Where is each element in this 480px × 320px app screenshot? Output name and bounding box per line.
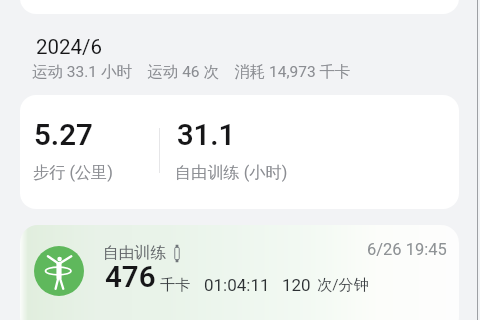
staticText: 2024/6: [36, 35, 103, 59]
staticText: 31.1: [177, 118, 235, 152]
staticText: 自由训练 (小时): [175, 162, 288, 182]
staticText: 运动 33.1 小时 运动 46 次 消耗 14,973 千卡: [32, 62, 351, 82]
staticText: 自由训练: [103, 243, 167, 263]
staticText: 千卡: [160, 275, 191, 294]
staticText: 步行 (公里): [33, 162, 113, 182]
staticText: 6/26 19:45: [367, 240, 447, 259]
button[interactable]: 5.27: [20, 95, 459, 209]
staticText: 01:04:11: [204, 275, 270, 295]
staticText: 476: [105, 260, 156, 295]
staticText: 5.27: [34, 118, 93, 153]
button[interactable]: 自由训练: [20, 225, 459, 320]
staticText: 次/分钟: [317, 275, 369, 294]
staticText: 120: [282, 275, 311, 295]
